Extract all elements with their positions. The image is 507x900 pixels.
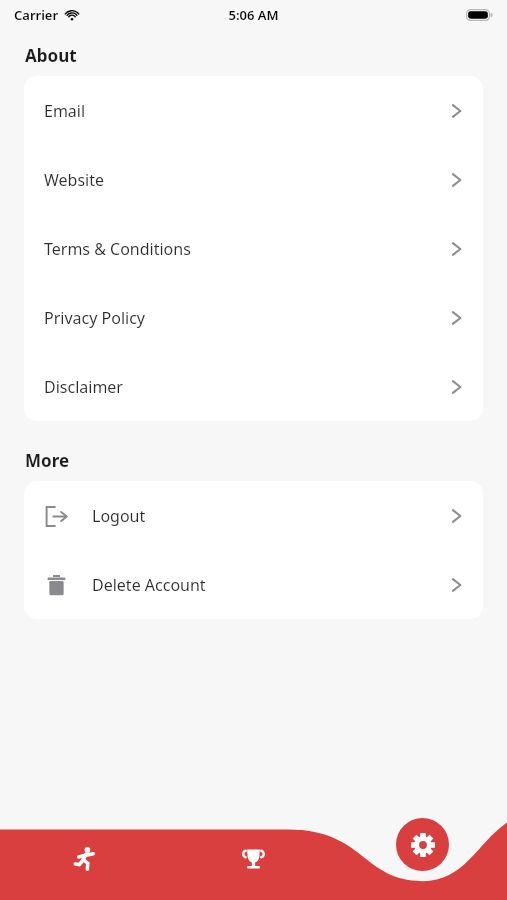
staticText: Disclaimer bbox=[44, 376, 123, 398]
staticText: About bbox=[25, 44, 77, 67]
button[interactable]: Website bbox=[24, 145, 483, 214]
button[interactable]: Achievements bbox=[169, 834, 338, 882]
button[interactable]: Logout bbox=[24, 481, 483, 550]
button[interactable]: Disclaimer bbox=[24, 352, 483, 421]
staticText: More bbox=[25, 449, 70, 472]
button[interactable]: Settings bbox=[396, 818, 449, 871]
staticText: Delete Account bbox=[92, 574, 206, 596]
staticText: Terms & Conditions bbox=[44, 238, 191, 260]
staticText: Email bbox=[44, 100, 86, 122]
staticText: Privacy Policy bbox=[44, 307, 145, 329]
button[interactable]: Privacy Policy bbox=[24, 283, 483, 352]
staticText: Logout bbox=[92, 505, 146, 527]
staticText: Carrier bbox=[14, 6, 59, 24]
staticText: Website bbox=[44, 169, 105, 191]
button[interactable]: Delete Account bbox=[24, 550, 483, 619]
staticText: 5:06 AM bbox=[228, 6, 279, 24]
button[interactable]: Terms & Conditions bbox=[24, 214, 483, 283]
button[interactable]: Email bbox=[24, 76, 483, 145]
button[interactable]: Activity bbox=[0, 834, 169, 882]
